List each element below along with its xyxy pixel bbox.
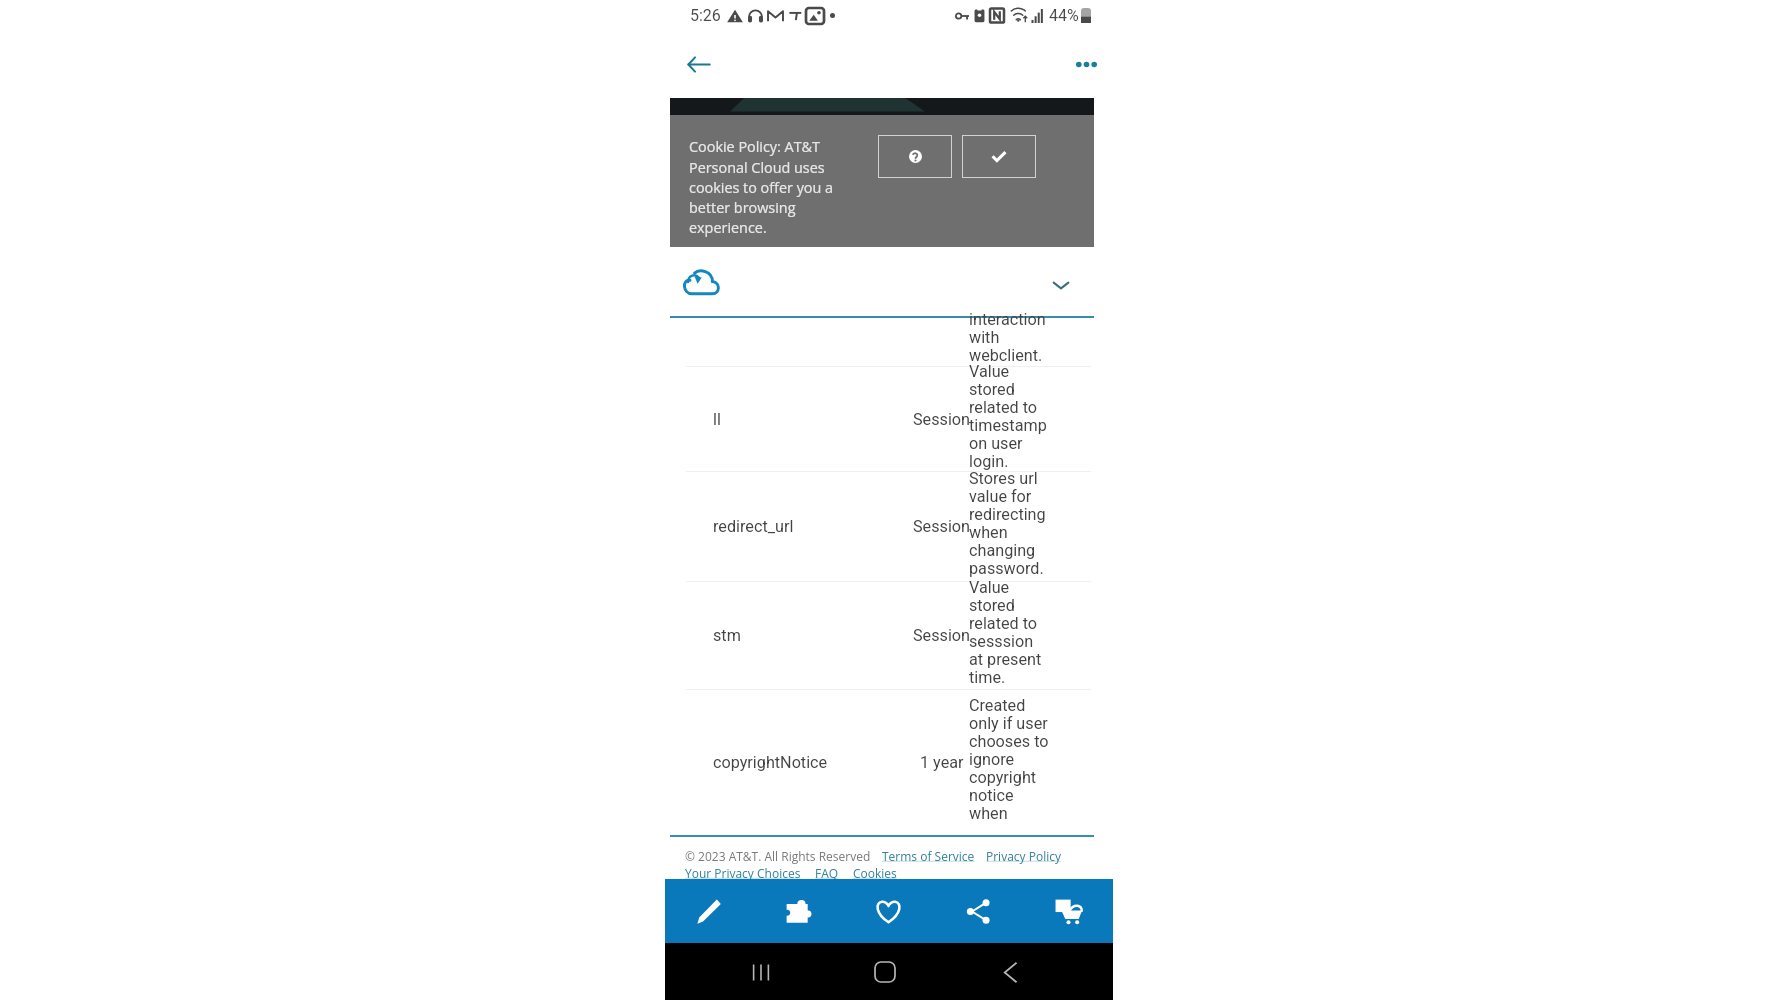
button[interactable]: Terms of Service [882, 848, 975, 864]
button[interactable]: Favorite [843, 879, 933, 943]
staticText: Cookie Policy: AT&T Personal Cloud uses … [689, 137, 844, 237]
button[interactable]: FAQ [815, 865, 839, 879]
button[interactable]: Recent apps [743, 954, 779, 990]
staticText: Session [913, 626, 971, 645]
button[interactable]: Extensions [754, 879, 843, 943]
staticText: Stores url value for redirecting when ch… [969, 469, 1051, 578]
staticText: 5:26 [690, 6, 721, 25]
staticText: Session [913, 410, 971, 429]
staticText: redirect_url [713, 517, 794, 536]
staticText: Session [913, 517, 971, 536]
button[interactable]: Privacy Policy [986, 848, 1061, 864]
button[interactable]: Delete [1023, 879, 1113, 943]
staticText: copyrightNotice [713, 753, 828, 772]
staticText: Value stored related to sesssion at pres… [969, 578, 1051, 687]
button[interactable]: More information [878, 135, 952, 178]
button[interactable]: Accept cookies [962, 135, 1036, 178]
button[interactable]: More options [1067, 45, 1105, 83]
button[interactable]: Share [933, 879, 1023, 943]
staticText: 44% [1049, 6, 1079, 25]
staticText: 1 year [920, 753, 964, 772]
button[interactable]: Your Privacy Choices [685, 865, 801, 879]
staticText: Created only if user chooses to ignore c… [969, 696, 1051, 823]
button[interactable]: Edit [665, 879, 754, 943]
staticText: stm [713, 626, 741, 645]
staticText: ll [713, 410, 721, 429]
button[interactable]: Expand menu [1045, 269, 1077, 301]
button[interactable]: Home [867, 954, 903, 990]
staticText: © 2023 AT&T. All Rights Reserved [685, 848, 871, 864]
staticText: interaction with webclient. [969, 310, 1051, 365]
staticText: Value stored related to timestamp on use… [969, 362, 1051, 471]
button[interactable]: Back [679, 45, 717, 83]
button[interactable]: Cookies [853, 865, 897, 879]
button[interactable]: Back [992, 954, 1028, 990]
